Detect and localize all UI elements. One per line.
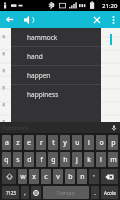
button[interactable]: Back — [0, 11, 18, 28]
button[interactable]: r — [36, 135, 46, 150]
staticText: happiness — [27, 90, 59, 99]
button[interactable]: j — [72, 152, 82, 167]
staticText: g — [51, 155, 56, 165]
staticText: ?123 — [6, 190, 16, 196]
button[interactable]: y — [60, 135, 70, 150]
staticText: hammock — [3, 124, 29, 131]
button[interactable]: b — [65, 169, 75, 184]
button[interactable]: f — [36, 152, 46, 167]
staticText: Accès — [104, 190, 116, 196]
button[interactable]: ?123 — [2, 186, 19, 199]
button[interactable]: Space — [43, 186, 89, 199]
button[interactable]: d — [24, 152, 34, 167]
staticText: q — [4, 155, 9, 165]
staticText: s — [16, 155, 20, 165]
staticText: ' — [93, 173, 95, 181]
staticText: k — [87, 155, 91, 165]
staticText: z — [16, 138, 20, 148]
button[interactable]: q — [2, 152, 11, 167]
staticText: h — [63, 155, 68, 165]
staticText: b — [68, 172, 73, 182]
staticText: o — [99, 138, 104, 148]
button[interactable]: e — [24, 135, 34, 150]
button[interactable]: hammock — [11, 28, 101, 46]
staticText: , — [24, 189, 26, 197]
button[interactable]: a — [2, 135, 11, 150]
button[interactable]: ' — [89, 169, 99, 184]
button[interactable]: p — [108, 135, 118, 150]
button[interactable]: Shift — [2, 169, 16, 184]
button[interactable]: n — [77, 169, 87, 184]
button[interactable]: v — [53, 169, 63, 184]
staticText: v — [56, 172, 60, 182]
button[interactable]: w — [18, 169, 27, 184]
button[interactable]: Backspace — [101, 169, 118, 184]
button[interactable]: i — [84, 135, 94, 150]
staticText: e — [27, 138, 31, 148]
button[interactable]: g — [48, 152, 58, 167]
staticText: f — [40, 155, 43, 165]
staticText: r — [40, 138, 43, 148]
button[interactable]: u — [72, 135, 82, 150]
button[interactable]: Voice input — [108, 122, 120, 133]
button[interactable]: hand — [11, 47, 101, 65]
button[interactable]: Accès — [101, 186, 118, 199]
staticText: happen — [27, 71, 51, 80]
staticText: n — [80, 172, 85, 182]
staticText: 21:20 — [102, 2, 118, 10]
staticText: t — [52, 138, 55, 148]
staticText: u — [75, 138, 80, 148]
staticText: w — [20, 172, 26, 182]
staticText: . — [94, 189, 96, 197]
staticText: hand — [27, 52, 43, 61]
button[interactable]: , — [21, 186, 29, 199]
button[interactable]: l — [96, 152, 106, 167]
staticText: l — [100, 155, 102, 165]
button[interactable]: o — [96, 135, 106, 150]
button[interactable]: k — [84, 152, 94, 167]
button[interactable]: z — [13, 135, 22, 150]
staticText: p — [111, 138, 116, 148]
button[interactable]: happen — [11, 66, 101, 84]
staticText: i — [88, 138, 90, 148]
staticText: c — [44, 172, 48, 182]
staticText: Français — [57, 190, 75, 196]
staticText: a — [5, 138, 9, 148]
button[interactable]: m — [108, 152, 118, 167]
staticText: m — [110, 155, 117, 165]
staticText: d — [27, 155, 32, 165]
button[interactable]: Speak — [18, 11, 38, 28]
button[interactable]: c — [41, 169, 51, 184]
button[interactable]: happiness — [11, 85, 101, 103]
button[interactable]: . — [91, 186, 99, 199]
staticText: x — [32, 172, 36, 182]
button[interactable]: Change language — [31, 186, 41, 199]
button[interactable]: x — [29, 169, 39, 184]
button[interactable]: t — [48, 135, 58, 150]
staticText: hammock — [27, 33, 58, 42]
button[interactable]: More options — [106, 11, 120, 28]
staticText: j — [76, 155, 78, 165]
staticText: y — [63, 138, 67, 148]
button[interactable]: h — [60, 152, 70, 167]
button[interactable]: Close — [88, 11, 106, 28]
button[interactable]: s — [13, 152, 22, 167]
